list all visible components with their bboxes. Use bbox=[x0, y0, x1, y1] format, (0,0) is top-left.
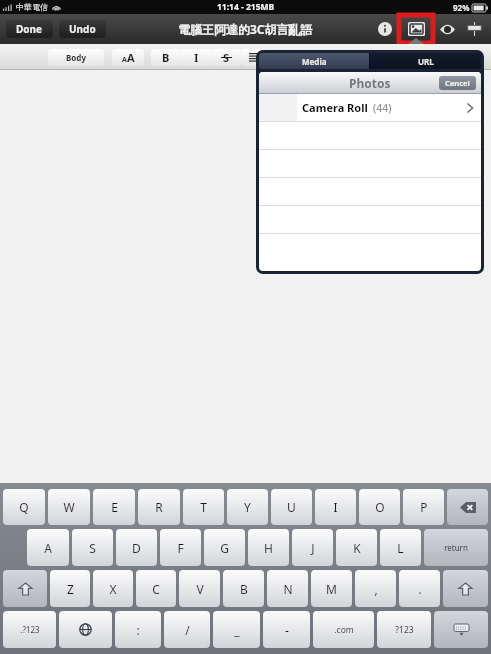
button[interactable]: A bbox=[27, 529, 69, 566]
staticText: ?123 bbox=[395, 624, 414, 636]
other: Shift bbox=[19, 583, 32, 595]
button[interactable]: K bbox=[336, 529, 377, 566]
button[interactable]: Shift bbox=[3, 570, 47, 607]
button[interactable]: Cancel bbox=[439, 76, 476, 90]
button[interactable]: Q bbox=[3, 489, 45, 525]
button[interactable]: B bbox=[151, 49, 181, 66]
button[interactable]: D bbox=[116, 529, 157, 566]
staticText: return bbox=[444, 542, 468, 553]
staticText: X bbox=[109, 581, 117, 597]
button[interactable]: G bbox=[204, 529, 245, 566]
staticText: T bbox=[200, 499, 207, 515]
staticText: M bbox=[326, 581, 337, 597]
button[interactable]: Preview bbox=[435, 17, 459, 41]
button[interactable]: N bbox=[267, 570, 308, 607]
staticText: G bbox=[220, 540, 229, 556]
button[interactable]: .?123 bbox=[3, 611, 56, 648]
staticText: A bbox=[127, 50, 135, 65]
staticText: I bbox=[194, 50, 199, 65]
button[interactable]: M bbox=[311, 570, 352, 607]
button[interactable]: E bbox=[93, 489, 135, 525]
staticText: URL bbox=[418, 56, 434, 67]
button[interactable]: S bbox=[211, 49, 241, 66]
other: Switch keyboard bbox=[79, 623, 92, 636]
staticText: O bbox=[375, 499, 385, 515]
button[interactable]: I bbox=[181, 49, 211, 66]
staticText: V bbox=[196, 581, 204, 597]
button[interactable]: .com bbox=[313, 611, 374, 648]
button[interactable]: Switch keyboard bbox=[59, 611, 112, 648]
button[interactable]: Insert photo bbox=[399, 15, 433, 43]
staticText: A bbox=[44, 540, 52, 556]
button[interactable]: Y bbox=[227, 489, 268, 525]
button[interactable]: F bbox=[160, 529, 201, 566]
button[interactable]: - bbox=[263, 611, 310, 648]
button[interactable]: A bbox=[112, 49, 144, 66]
staticText: E bbox=[111, 499, 118, 515]
button[interactable] bbox=[241, 49, 267, 66]
staticText: 電腦王阿達的3C胡言亂語 bbox=[178, 21, 313, 37]
staticText: P bbox=[420, 499, 428, 515]
button[interactable]: R bbox=[138, 489, 180, 525]
staticText: Media bbox=[302, 56, 327, 67]
staticText: A bbox=[122, 55, 127, 65]
button[interactable]: U bbox=[271, 489, 312, 525]
staticText: 92% bbox=[453, 2, 470, 13]
button[interactable]: I bbox=[315, 489, 356, 525]
staticText: Y bbox=[244, 499, 251, 515]
staticText: Z bbox=[67, 581, 74, 597]
staticText: Photos bbox=[349, 75, 391, 91]
button[interactable]: _ bbox=[213, 611, 260, 648]
staticText: : bbox=[136, 622, 140, 638]
staticText: - bbox=[285, 622, 289, 638]
staticText: C bbox=[152, 581, 160, 597]
staticText: / bbox=[185, 622, 190, 638]
staticText: .com bbox=[334, 624, 354, 636]
button[interactable]: Body bbox=[48, 49, 104, 66]
staticText: , bbox=[374, 581, 378, 597]
button[interactable]: Z bbox=[50, 570, 90, 607]
staticText: 11:14 - 215MB bbox=[217, 1, 275, 13]
button[interactable]: J bbox=[292, 529, 333, 566]
button[interactable]: T bbox=[183, 489, 224, 525]
button[interactable]: . bbox=[399, 570, 440, 607]
other: Backspace bbox=[460, 502, 476, 513]
button[interactable]: V bbox=[179, 570, 220, 607]
staticText: B bbox=[162, 50, 170, 65]
button[interactable]: L bbox=[380, 529, 421, 566]
button[interactable]: W bbox=[48, 489, 90, 525]
button[interactable]: C bbox=[136, 570, 176, 607]
button[interactable]: ?123 bbox=[377, 611, 431, 648]
staticText: Camera Roll bbox=[302, 100, 368, 115]
staticText: (44) bbox=[373, 101, 392, 115]
button[interactable]: H bbox=[248, 529, 289, 566]
staticText: J bbox=[311, 540, 315, 556]
button[interactable]: Media bbox=[259, 53, 369, 69]
button[interactable]: , bbox=[355, 570, 396, 607]
button[interactable]: Info bbox=[373, 17, 397, 41]
staticText: N bbox=[283, 581, 293, 597]
button[interactable]: X bbox=[93, 570, 133, 607]
button[interactable]: HTML bbox=[461, 16, 487, 42]
button[interactable]: S bbox=[72, 529, 113, 566]
button[interactable]: P bbox=[403, 489, 444, 525]
button[interactable]: URL bbox=[370, 53, 481, 69]
button[interactable]: return bbox=[424, 529, 488, 566]
staticText: D bbox=[132, 540, 141, 556]
button[interactable]: Shift bbox=[443, 570, 488, 607]
button[interactable]: B bbox=[223, 570, 264, 607]
button[interactable]: Camera Roll bbox=[259, 94, 481, 121]
button[interactable]: : bbox=[115, 611, 161, 648]
button[interactable]: Undo bbox=[59, 20, 106, 38]
staticText: 中華電信 bbox=[16, 2, 48, 12]
button[interactable]: Backspace bbox=[447, 489, 488, 525]
button[interactable]: O bbox=[359, 489, 400, 525]
button[interactable]: Hide keyboard bbox=[434, 611, 488, 648]
staticText: . bbox=[418, 581, 422, 597]
staticText: _ bbox=[234, 622, 240, 638]
staticText: S bbox=[89, 540, 96, 556]
staticText: Body bbox=[66, 52, 86, 63]
button[interactable]: Done bbox=[6, 20, 53, 38]
staticText: F bbox=[177, 540, 184, 556]
button[interactable]: / bbox=[164, 611, 210, 648]
